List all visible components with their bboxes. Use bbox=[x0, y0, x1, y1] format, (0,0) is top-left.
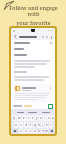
button[interactable]: y bbox=[35, 115, 38, 121]
staticText: u bbox=[40, 116, 42, 120]
staticText: Follow and engage with bbox=[6, 4, 61, 18]
button[interactable]: r bbox=[27, 115, 30, 121]
button[interactable]: l bbox=[49, 122, 52, 128]
button[interactable]: h bbox=[37, 122, 40, 128]
button[interactable]: v bbox=[33, 129, 36, 133]
staticText: a bbox=[15, 123, 17, 127]
staticText: p bbox=[52, 116, 54, 120]
button[interactable]: a bbox=[14, 122, 18, 128]
button[interactable]: t bbox=[31, 115, 34, 121]
staticText: w bbox=[18, 116, 21, 120]
button[interactable]: Back bbox=[13, 34, 18, 39]
button[interactable]: p bbox=[51, 115, 54, 121]
staticText: t bbox=[32, 116, 34, 120]
button[interactable]: i bbox=[43, 115, 46, 121]
staticText: c bbox=[30, 129, 32, 133]
button[interactable]: s bbox=[19, 122, 23, 128]
button[interactable]: z bbox=[19, 129, 23, 133]
button[interactable]: More options bbox=[49, 35, 53, 39]
staticText: f bbox=[30, 123, 32, 127]
staticText: e bbox=[23, 116, 25, 120]
staticText: your favorite writers. bbox=[6, 19, 61, 33]
button[interactable]: k bbox=[45, 122, 48, 128]
staticText: d bbox=[25, 123, 27, 127]
button[interactable]: Shift bbox=[12, 129, 18, 133]
button[interactable] bbox=[17, 112, 24, 113]
staticText: y bbox=[36, 116, 38, 120]
button[interactable] bbox=[28, 112, 37, 113]
staticText: z bbox=[20, 129, 22, 133]
staticText: q bbox=[13, 116, 15, 120]
button[interactable] bbox=[13, 105, 22, 107]
staticText: l bbox=[50, 123, 51, 127]
staticText: b bbox=[38, 129, 40, 133]
button[interactable] bbox=[11, 40, 55, 46]
button[interactable]: Send bbox=[45, 35, 49, 39]
staticText: h bbox=[38, 123, 40, 127]
staticText: n bbox=[42, 129, 44, 133]
staticText: v bbox=[34, 129, 36, 133]
staticText: g bbox=[34, 123, 36, 127]
button[interactable]: d bbox=[24, 122, 28, 128]
button[interactable]: q bbox=[12, 115, 16, 121]
button[interactable]: u bbox=[39, 115, 42, 121]
button[interactable] bbox=[42, 112, 50, 113]
staticText: k bbox=[46, 123, 48, 127]
button[interactable]: j bbox=[41, 122, 44, 128]
button[interactable] bbox=[11, 52, 55, 58]
staticText: s bbox=[20, 123, 22, 127]
button[interactable]: o bbox=[47, 115, 50, 121]
button[interactable]: g bbox=[33, 122, 36, 128]
button[interactable] bbox=[11, 46, 55, 52]
button[interactable]: Insert bbox=[48, 104, 53, 109]
staticText: i bbox=[44, 116, 45, 120]
button[interactable]: f bbox=[29, 122, 32, 128]
button[interactable]: w bbox=[17, 115, 21, 121]
staticText: o bbox=[48, 116, 50, 120]
staticText: j bbox=[42, 123, 43, 127]
button[interactable]: x bbox=[24, 129, 28, 133]
button[interactable]: c bbox=[29, 129, 32, 133]
staticText: r bbox=[28, 116, 30, 120]
button[interactable]: m bbox=[45, 129, 48, 133]
button[interactable]: Backspace bbox=[49, 129, 54, 133]
staticText: m bbox=[45, 129, 48, 133]
button[interactable]: b bbox=[37, 129, 40, 133]
button[interactable]: n bbox=[41, 129, 44, 133]
button[interactable] bbox=[24, 105, 32, 107]
button[interactable]: e bbox=[22, 115, 26, 121]
button[interactable]: Attach bbox=[41, 35, 45, 39]
staticText: x bbox=[25, 129, 27, 133]
